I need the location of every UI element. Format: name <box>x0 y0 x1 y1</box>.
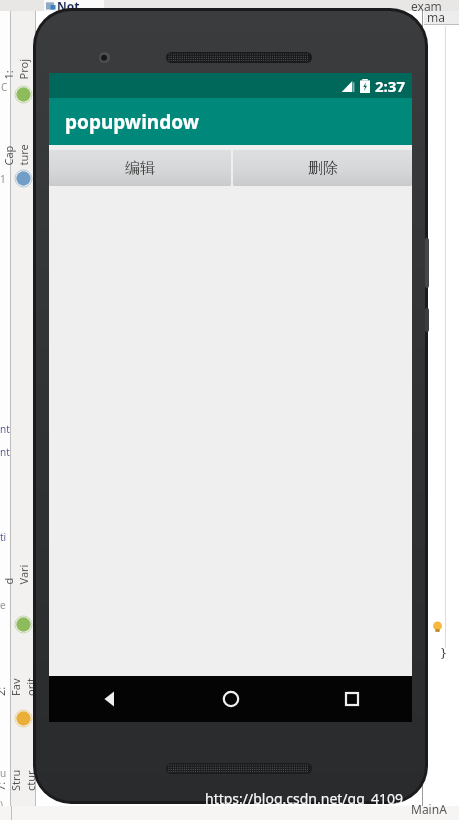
staticText: u <box>0 766 7 780</box>
button[interactable]: Build Variants <box>12 533 34 613</box>
staticText: https://blog.csdn.net/qq_4109 <box>205 789 404 808</box>
button[interactable]: Home <box>170 676 291 722</box>
staticText: ti <box>0 530 7 544</box>
button[interactable]: 1: Project <box>12 28 34 108</box>
staticText: exam <box>411 0 442 14</box>
button[interactable]: 2: Favorites <box>12 645 34 725</box>
staticText: 2: Favorites <box>0 674 53 696</box>
staticText: 7: Structure <box>0 769 53 791</box>
button[interactable] <box>44 0 104 11</box>
button[interactable]: Back <box>49 676 170 722</box>
button[interactable]: 删除 <box>233 150 412 186</box>
staticText: 1 <box>0 172 6 186</box>
button[interactable]: Captures <box>12 114 34 194</box>
button[interactable]: Recent apps <box>291 676 412 722</box>
staticText: 编辑 <box>125 159 155 178</box>
staticText: Build Variants <box>0 562 60 584</box>
staticText: e <box>0 598 6 612</box>
staticText: 1: Project <box>0 57 45 79</box>
staticText: C <box>1 80 8 94</box>
staticText: ) <box>0 798 3 812</box>
staticText: 2:37 <box>375 76 405 96</box>
staticText: popupwindow <box>65 109 199 135</box>
staticText: Captures <box>0 143 45 165</box>
staticText: Not <box>57 0 80 14</box>
staticText: 删除 <box>308 159 338 178</box>
staticText: } <box>441 643 446 661</box>
button[interactable]: 7: Structure <box>12 740 34 820</box>
staticText: nt <box>0 445 10 459</box>
button[interactable]: 编辑 <box>49 150 231 186</box>
staticText: MainA <box>411 801 447 817</box>
staticText: nt <box>0 422 10 436</box>
staticText: ma <box>427 9 445 25</box>
